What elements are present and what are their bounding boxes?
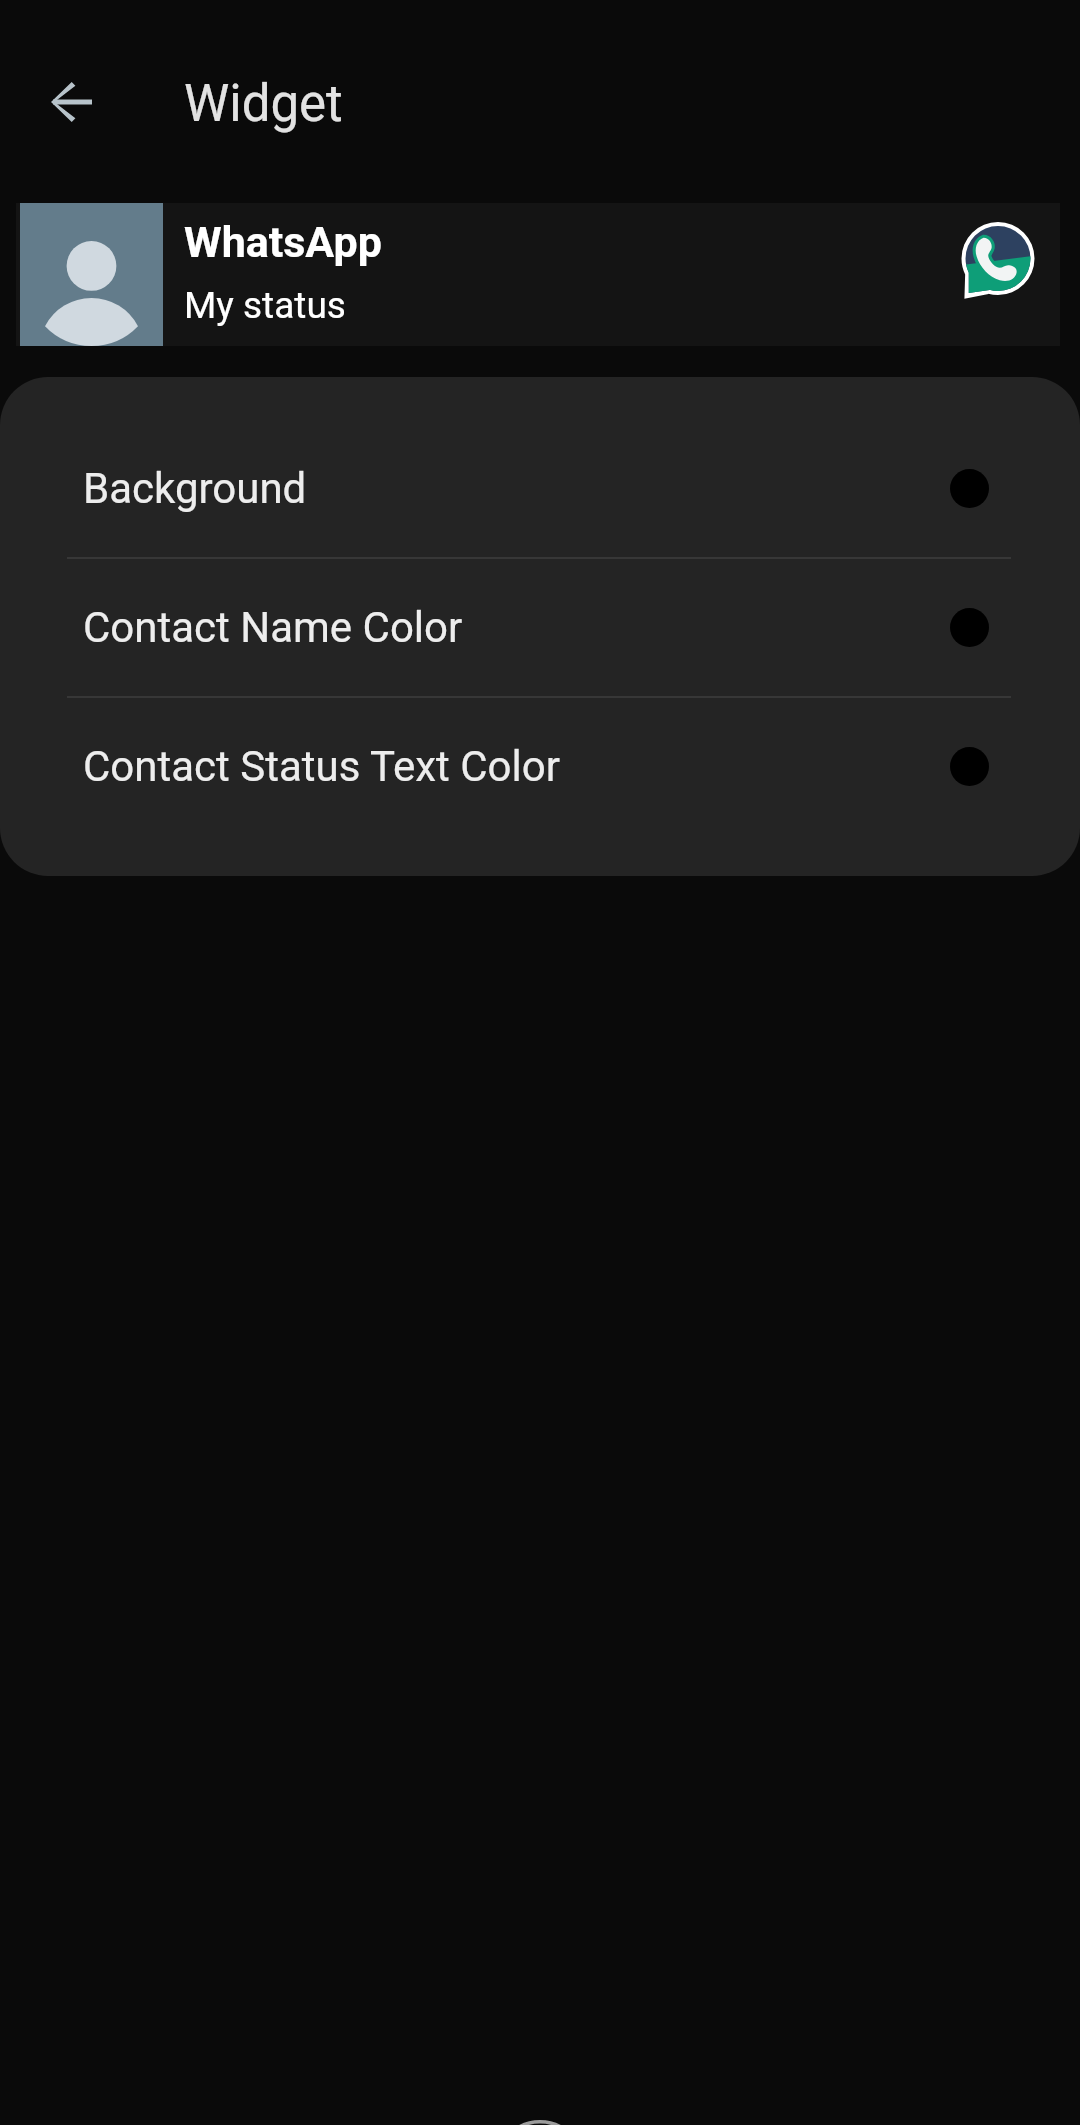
staticText: Contact Name Color: [83, 603, 463, 652]
button[interactable]: Background: [0, 420, 1080, 557]
button[interactable]: Home: [495, 2120, 585, 2125]
staticText: Contact Status Text Color: [83, 742, 560, 791]
staticText: Widget: [184, 74, 343, 134]
button[interactable]: Contact Name Color: [0, 559, 1080, 696]
button[interactable]: Contact Status Text Color: [0, 698, 1080, 835]
staticText: WhatsApp: [184, 217, 382, 267]
staticText: My status: [184, 284, 346, 327]
button[interactable]: Back: [26, 56, 117, 147]
staticText: Background: [83, 464, 307, 513]
button[interactable]: WhatsApp: [16, 203, 1060, 346]
